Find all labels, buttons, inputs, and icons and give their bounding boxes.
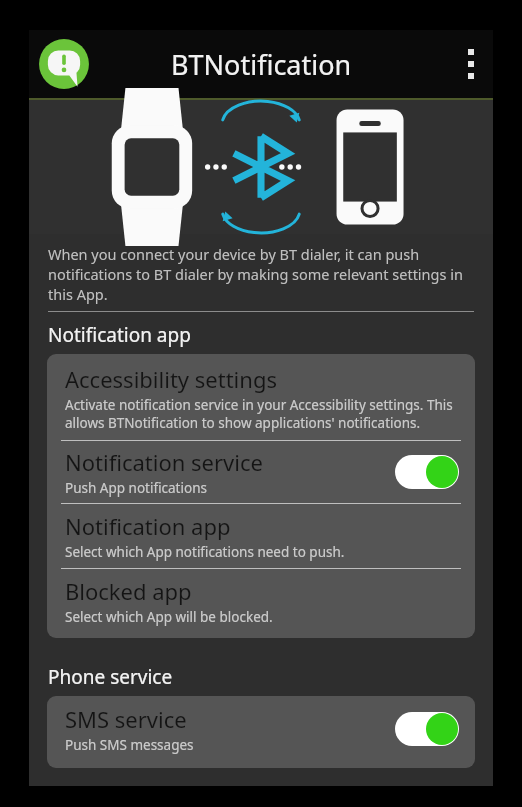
staticText: Push App notifications [65, 479, 207, 497]
button[interactable]: App icon [35, 35, 93, 93]
staticText: Activate notification service in your Ac… [65, 396, 459, 432]
staticText: Notification app [65, 511, 231, 541]
button[interactable]: More options [449, 30, 493, 98]
staticText: Blocked app [65, 576, 192, 606]
staticText: BTNotification [171, 46, 352, 83]
button[interactable]: Toggle on [395, 712, 459, 746]
staticText: Select which App will be blocked. [65, 608, 273, 626]
staticText: SMS service [65, 704, 187, 734]
staticText: Notification service [65, 447, 263, 477]
staticText: When you connect your device by BT diale… [48, 244, 474, 304]
button[interactable]: Toggle on [395, 455, 459, 489]
staticText: Phone service [48, 664, 173, 690]
staticText: Accessibility settings [65, 364, 277, 394]
button[interactable]: Blocked app [47, 569, 475, 638]
staticText: Push SMS messages [65, 736, 194, 754]
button[interactable]: Notification service [47, 441, 475, 503]
staticText: Select which App notifications need to p… [65, 543, 345, 561]
staticText: Notification app [48, 322, 191, 348]
button[interactable]: SMS service [47, 696, 475, 768]
button[interactable]: Accessibility settings [47, 354, 475, 440]
button[interactable]: Notification app [47, 504, 475, 568]
